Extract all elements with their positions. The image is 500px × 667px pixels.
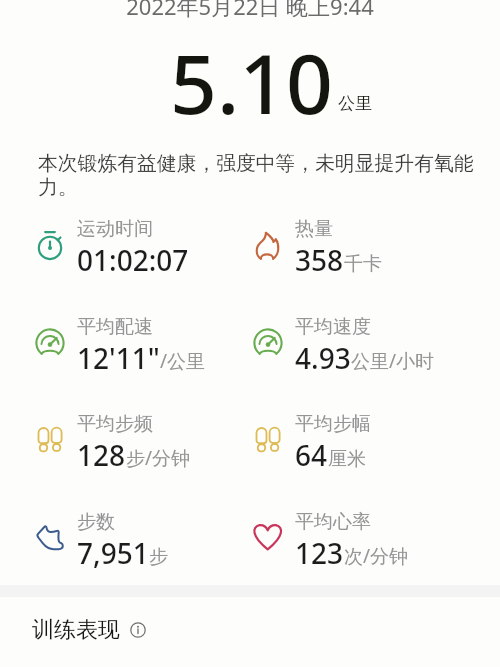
staticText: 123 — [295, 534, 344, 572]
staticText: 步数 — [77, 510, 115, 534]
staticText: 7,951 — [77, 534, 149, 572]
button[interactable]: Calories — [250, 208, 468, 288]
staticText: /公里 — [160, 348, 206, 374]
staticText: 热量 — [295, 217, 333, 241]
button[interactable]: Average pace — [32, 306, 250, 386]
staticText: 公里 — [338, 93, 372, 114]
staticText: 128 — [77, 436, 126, 474]
staticText: 平均步幅 — [295, 412, 371, 436]
staticText: 公里/小时 — [351, 348, 435, 374]
staticText: 12'11" — [77, 339, 160, 377]
staticText: 平均速度 — [295, 315, 371, 339]
button[interactable]: Average speed — [250, 306, 468, 386]
staticText: 厘米 — [328, 447, 366, 471]
staticText: 4.93 — [295, 339, 351, 377]
staticText: 步 — [149, 545, 168, 569]
staticText: 本次锻炼有益健康，强度中等，未明显提升有氧能力。 — [38, 151, 488, 200]
staticText: 358 — [295, 241, 344, 279]
button[interactable]: Duration — [32, 208, 250, 288]
staticText: 5.10 — [170, 26, 334, 138]
staticText: 步/分钟 — [126, 445, 191, 471]
button[interactable]: Average stride — [250, 403, 468, 483]
button[interactable]: 训练表现 — [32, 616, 146, 644]
staticText: 64 — [295, 436, 328, 474]
button[interactable]: Steps — [32, 501, 250, 581]
staticText: 次/分钟 — [344, 543, 409, 569]
staticText: 01:02:07 — [77, 241, 189, 279]
staticText: 平均心率 — [295, 510, 371, 534]
button[interactable]: Average cadence — [32, 403, 250, 483]
button[interactable]: Average heart rate — [250, 501, 468, 581]
other: Info — [130, 622, 146, 638]
staticText: 运动时间 — [77, 217, 153, 241]
staticText: 2022年5月22日 晚上9:44 — [0, 0, 500, 21]
staticText: 平均步频 — [77, 412, 153, 436]
staticText: 平均配速 — [77, 315, 153, 339]
staticText: 千卡 — [344, 252, 382, 276]
staticText: 训练表现 — [32, 616, 120, 644]
